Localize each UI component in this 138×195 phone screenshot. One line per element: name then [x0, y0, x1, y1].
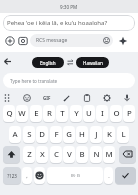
- staticText: Hawaiian: [83, 60, 103, 66]
- button[interactable]: J: [90, 126, 102, 143]
- button[interactable]: F: [50, 126, 62, 143]
- button[interactable]: X: [36, 146, 48, 163]
- staticText: 9:30 PM: [60, 4, 78, 10]
- button[interactable]: Type here to translate: [3, 73, 135, 88]
- button[interactable]: H: [76, 126, 88, 143]
- staticText: W: [18, 108, 26, 119]
- staticText: ,: [26, 172, 28, 179]
- button[interactable]: Z: [23, 146, 35, 163]
- button[interactable]: I: [96, 105, 108, 122]
- staticText: Pehea ʻoe i kēia lā, e kuʻu hoaaloha?: [7, 19, 108, 27]
- staticText: L: [121, 129, 126, 140]
- staticText: P: [127, 108, 132, 119]
- button[interactable]: [22, 93, 32, 103]
- button[interactable]: [62, 93, 72, 103]
- staticText: Y: [74, 108, 79, 119]
- staticText: X: [40, 149, 45, 160]
- button[interactable]: R: [43, 105, 55, 122]
- button[interactable]: English: [32, 57, 64, 68]
- button[interactable]: EN · ES: [47, 167, 103, 184]
- staticText: .: [108, 172, 110, 179]
- button[interactable]: [82, 93, 92, 103]
- button[interactable]: .: [104, 167, 113, 184]
- button[interactable]: ?123: [3, 167, 21, 184]
- staticText: U: [86, 108, 92, 119]
- button[interactable]: ,: [22, 167, 32, 184]
- button[interactable]: RCS message: [30, 34, 113, 47]
- button[interactable]: U: [83, 105, 95, 122]
- button[interactable]: [115, 167, 136, 184]
- button[interactable]: [119, 146, 136, 163]
- button[interactable]: [2, 56, 13, 67]
- staticText: D: [39, 129, 45, 140]
- button[interactable]: P: [123, 105, 135, 122]
- button[interactable]: D: [36, 126, 48, 143]
- button[interactable]: M: [103, 146, 115, 163]
- staticText: ?123: [7, 173, 17, 179]
- button[interactable]: [17, 35, 29, 47]
- button[interactable]: [122, 93, 132, 103]
- button[interactable]: K: [103, 126, 115, 143]
- staticText: H: [79, 129, 85, 140]
- staticText: Q: [6, 108, 13, 119]
- button[interactable]: [117, 35, 129, 47]
- staticText: O: [113, 108, 120, 119]
- staticText: E: [34, 108, 39, 119]
- staticText: English: [40, 60, 56, 66]
- button[interactable]: S: [23, 126, 35, 143]
- button[interactable]: T: [56, 105, 68, 122]
- staticText: N: [93, 149, 100, 160]
- button[interactable]: O: [110, 105, 122, 122]
- button[interactable]: C: [50, 146, 62, 163]
- staticText: I: [101, 108, 104, 119]
- staticText: K: [107, 129, 112, 140]
- button[interactable]: V: [63, 146, 75, 163]
- staticText: RCS message: [36, 37, 68, 44]
- staticText: A: [12, 129, 18, 140]
- button[interactable]: [4, 35, 16, 47]
- button[interactable]: [2, 93, 12, 103]
- button[interactable]: N: [90, 146, 102, 163]
- staticText: C: [54, 149, 59, 160]
- button[interactable]: Hawaiian: [76, 57, 109, 68]
- staticText: B: [79, 149, 85, 160]
- button[interactable]: G: [63, 126, 75, 143]
- button[interactable]: A: [9, 126, 21, 143]
- button[interactable]: Y: [70, 105, 82, 122]
- button[interactable]: B: [76, 146, 88, 163]
- staticText: R: [47, 108, 52, 119]
- button[interactable]: L: [117, 126, 129, 143]
- button[interactable]: GIF: [41, 94, 53, 102]
- staticText: T: [60, 108, 65, 119]
- button[interactable]: [3, 146, 20, 163]
- staticText: V: [67, 149, 72, 160]
- staticText: M: [105, 149, 113, 160]
- staticText: EN · ES: [71, 174, 80, 178]
- button[interactable]: Pehea ʻoe i kēia lā, e kuʻu hoaaloha?: [3, 15, 135, 31]
- staticText: G: [66, 129, 72, 140]
- button[interactable]: E: [30, 105, 42, 122]
- staticText: GIF: [43, 95, 51, 101]
- staticText: Type here to translate: [10, 78, 58, 84]
- button[interactable]: [102, 93, 112, 103]
- staticText: S: [27, 129, 32, 140]
- button[interactable]: Q: [3, 105, 15, 122]
- button[interactable]: [34, 167, 45, 184]
- staticText: J: [95, 129, 98, 140]
- staticText: Z: [27, 149, 32, 160]
- button[interactable]: W: [16, 105, 28, 122]
- staticText: F: [54, 129, 59, 140]
